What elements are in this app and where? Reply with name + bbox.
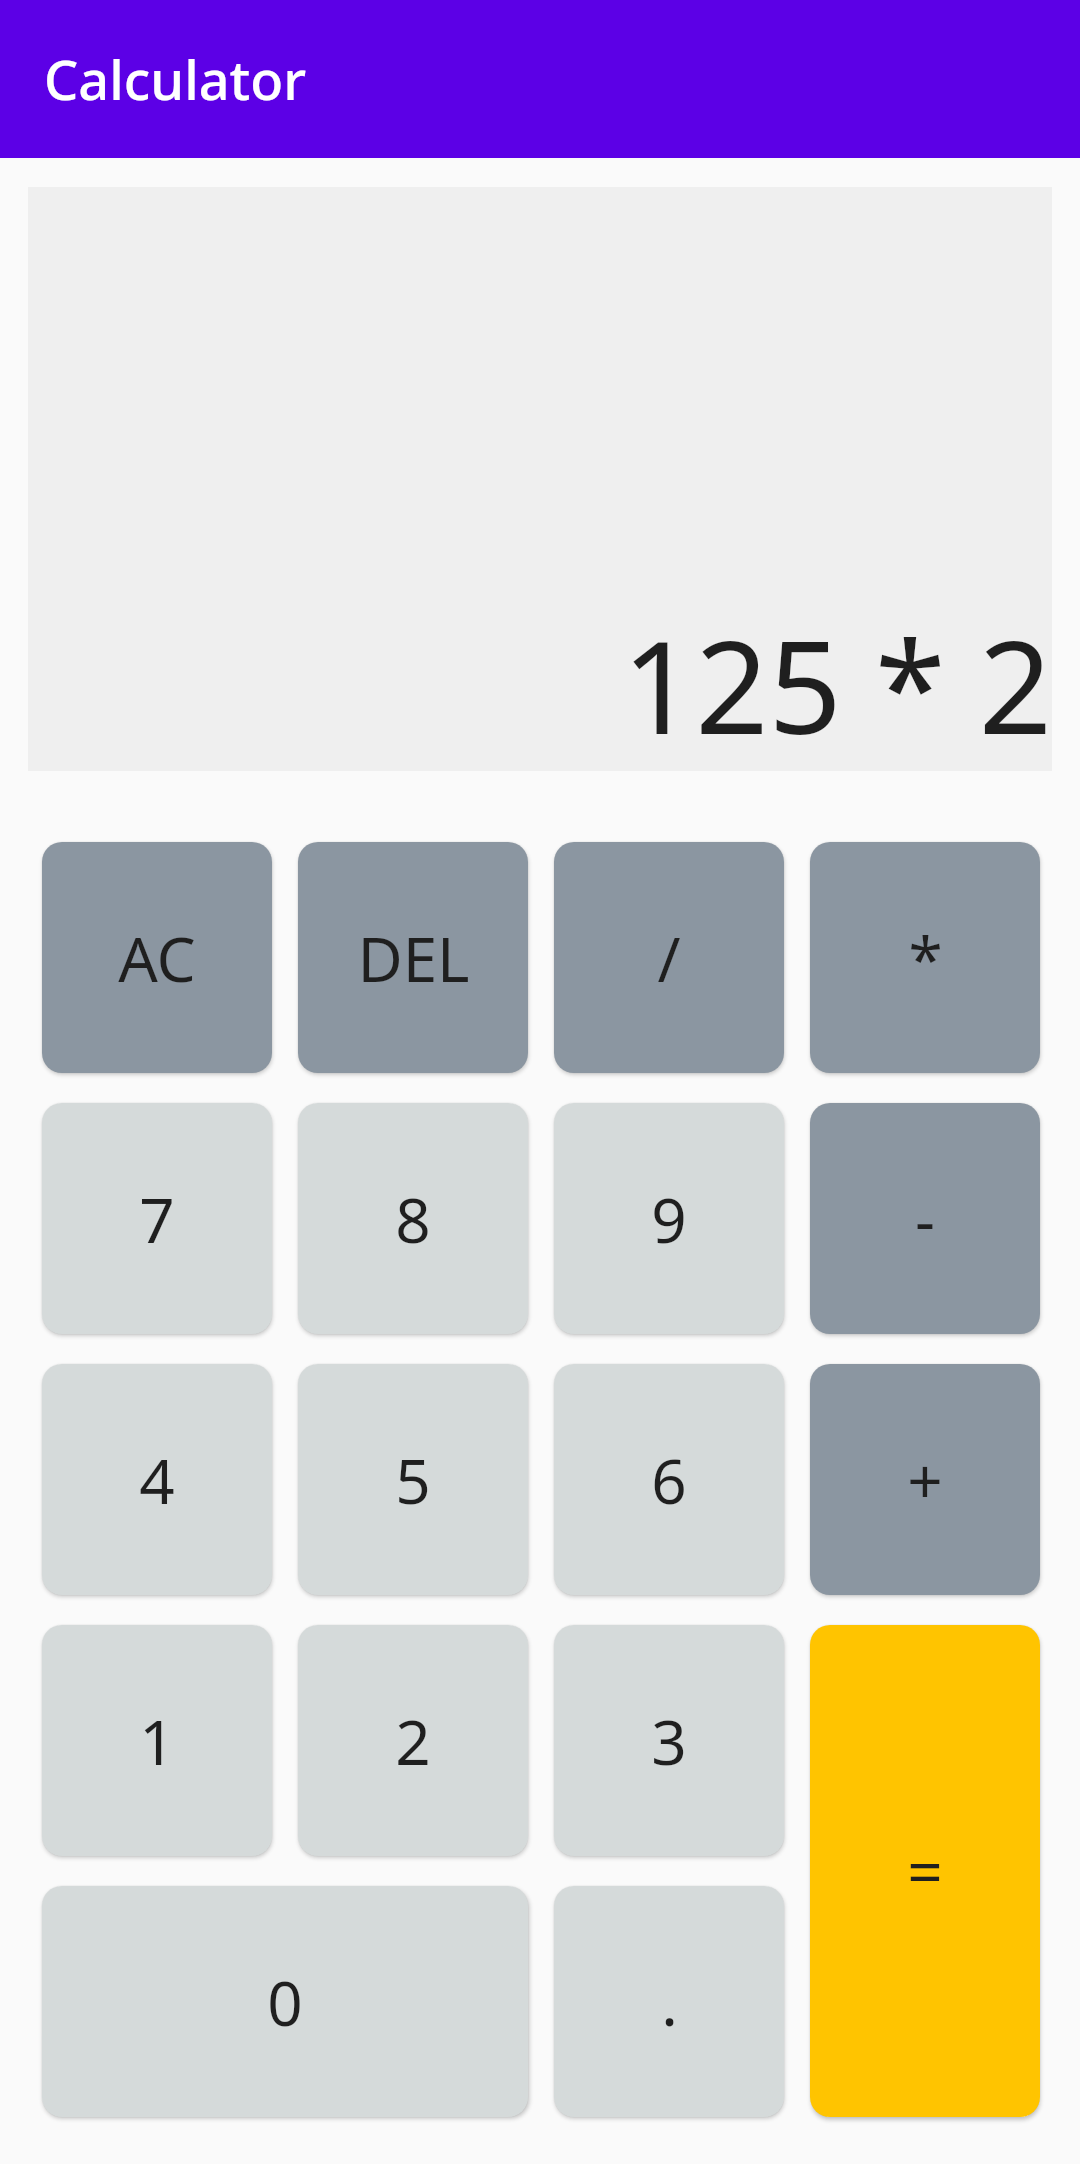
button[interactable]: + — [810, 1364, 1040, 1595]
button[interactable]: DEL — [298, 842, 528, 1073]
button[interactable]: Calculator — [0, 0, 1080, 158]
button[interactable]: 5 — [298, 1364, 528, 1595]
button[interactable]: 6 — [554, 1364, 784, 1595]
staticText: + — [907, 1438, 943, 1522]
button[interactable]: 7 — [42, 1103, 272, 1334]
staticText: . — [661, 1960, 678, 2044]
staticText: 7 — [139, 1177, 175, 1261]
staticText: - — [915, 1177, 935, 1261]
button[interactable]: AC — [42, 842, 272, 1073]
staticText: 9 — [651, 1177, 687, 1261]
button[interactable]: 3 — [554, 1625, 784, 1856]
staticText: Calculator — [44, 42, 307, 116]
staticText: 2 — [395, 1699, 431, 1783]
button[interactable]: 4 — [42, 1364, 272, 1595]
staticText: 4 — [139, 1438, 175, 1522]
staticText: 6 — [651, 1438, 687, 1522]
staticText: AC — [118, 916, 196, 1000]
staticText: = — [907, 1829, 943, 1913]
staticText: 0 — [267, 1960, 303, 2044]
staticText: / — [657, 916, 681, 1000]
button[interactable]: 2 — [298, 1625, 528, 1856]
staticText: * — [908, 916, 943, 1000]
button[interactable]: / — [554, 842, 784, 1073]
button[interactable]: 9 — [554, 1103, 784, 1334]
staticText: 8 — [395, 1177, 431, 1261]
staticText: 3 — [651, 1699, 687, 1783]
button[interactable]: * — [810, 842, 1040, 1073]
staticText: 1 — [139, 1699, 175, 1783]
staticText: 125 * 2 — [622, 597, 1052, 771]
button[interactable]: = — [810, 1625, 1040, 2117]
button[interactable]: - — [810, 1103, 1040, 1334]
button[interactable]: 0 — [42, 1886, 528, 2117]
button[interactable]: 1 — [42, 1625, 272, 1856]
button[interactable]: 8 — [298, 1103, 528, 1334]
staticText: DEL — [357, 916, 470, 1000]
button[interactable]: . — [554, 1886, 784, 2117]
staticText: 5 — [395, 1438, 431, 1522]
